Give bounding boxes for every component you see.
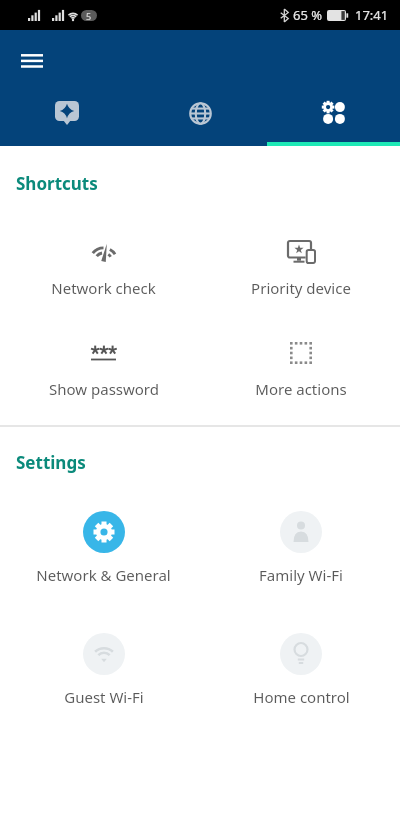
button[interactable]: Show password	[5, 335, 202, 399]
staticText: Guest Wi-Fi	[64, 687, 144, 707]
button[interactable]: Guest Wi-Fi	[5, 633, 202, 707]
staticText: Settings	[16, 451, 86, 474]
staticText: Show password	[49, 379, 159, 399]
staticText: 5	[86, 10, 92, 21]
button[interactable]: Network & General	[5, 511, 202, 585]
staticText: 17:41	[355, 6, 389, 24]
staticText: Shortcuts	[16, 172, 98, 195]
button[interactable]: Network check	[5, 234, 202, 298]
staticText: Family Wi-Fi	[259, 565, 343, 585]
button[interactable]: More actions	[202, 335, 400, 399]
button[interactable]: Priority device	[202, 234, 400, 298]
button[interactable]: Family Wi-Fi	[202, 511, 400, 585]
button[interactable]	[267, 88, 400, 142]
staticText: 65 %	[293, 6, 323, 24]
button[interactable]	[12, 41, 52, 81]
button[interactable]	[0, 88, 134, 142]
button[interactable]	[134, 88, 267, 142]
staticText: More actions	[255, 379, 347, 399]
staticText: Priority device	[251, 278, 351, 298]
button[interactable]: Home control	[202, 633, 400, 707]
staticText: Network & General	[36, 565, 171, 585]
staticText: Network check	[51, 278, 156, 298]
staticText: Home control	[253, 687, 350, 707]
